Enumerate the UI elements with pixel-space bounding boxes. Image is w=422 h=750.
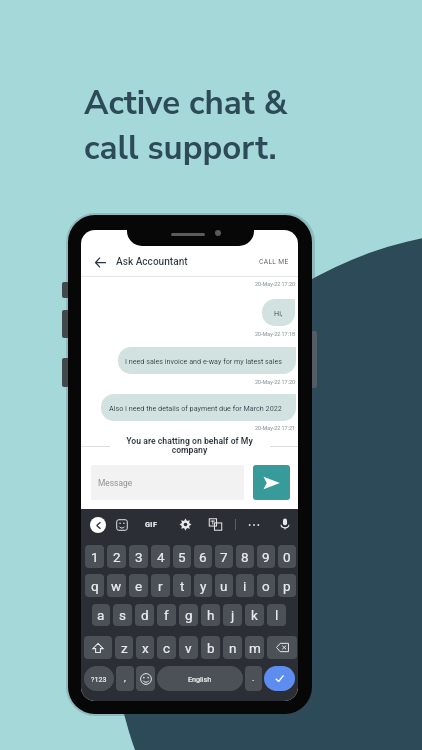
button[interactable]: o bbox=[257, 574, 275, 597]
staticText: . bbox=[252, 673, 255, 684]
button[interactable]: Send bbox=[253, 465, 290, 500]
button[interactable]: a bbox=[92, 604, 110, 626]
button[interactable]: Shift bbox=[84, 636, 112, 659]
staticText: t bbox=[180, 578, 185, 594]
staticText: 0 bbox=[283, 549, 291, 565]
staticText: call support. bbox=[84, 126, 277, 171]
button[interactable]: s bbox=[113, 604, 132, 626]
staticText: CALL ME bbox=[259, 258, 289, 266]
staticText: , bbox=[124, 673, 126, 684]
staticText: 20-May-22 17:20 bbox=[255, 281, 296, 287]
staticText: Hi, bbox=[274, 309, 283, 317]
staticText: y bbox=[200, 578, 207, 594]
staticText: z bbox=[121, 640, 128, 656]
button[interactable]: 9 bbox=[257, 545, 275, 568]
staticText: x bbox=[142, 640, 149, 656]
staticText: Active chat & bbox=[84, 81, 288, 126]
button[interactable]: Stickers bbox=[116, 519, 128, 531]
button[interactable]: u bbox=[215, 574, 233, 597]
staticText: d bbox=[141, 607, 149, 623]
staticText: 20-May-22 17:21 bbox=[255, 425, 296, 431]
staticText: g bbox=[185, 607, 193, 623]
button[interactable]: 7 bbox=[215, 545, 233, 568]
button[interactable]: f bbox=[157, 604, 176, 626]
staticText: b bbox=[207, 640, 215, 656]
staticText: a bbox=[97, 607, 105, 623]
button[interactable]: Voice input bbox=[279, 518, 291, 530]
button[interactable]: 8 bbox=[236, 545, 254, 568]
button[interactable]: q bbox=[85, 574, 104, 597]
staticText: Message bbox=[98, 478, 133, 488]
button[interactable]: 1 bbox=[85, 545, 104, 568]
staticText: f bbox=[164, 607, 169, 623]
staticText: 9 bbox=[262, 549, 270, 565]
button[interactable]: Settings bbox=[179, 518, 192, 531]
button[interactable]: Enter bbox=[264, 666, 295, 691]
button[interactable]: Also I need the details of payment due f… bbox=[101, 394, 296, 421]
button[interactable]: k bbox=[245, 604, 264, 626]
button[interactable]: Backspace bbox=[267, 636, 297, 659]
button[interactable]: v bbox=[179, 636, 198, 659]
button[interactable]: t bbox=[173, 574, 191, 597]
staticText: 20-May-22 17:20 bbox=[255, 379, 296, 385]
staticText: j bbox=[231, 607, 235, 623]
staticText: l bbox=[275, 607, 279, 623]
button[interactable]: 5 bbox=[173, 545, 191, 568]
button[interactable]: Back bbox=[91, 253, 109, 271]
button[interactable]: y bbox=[194, 574, 212, 597]
button[interactable]: l bbox=[267, 604, 286, 626]
staticText: 8 bbox=[241, 549, 249, 565]
button[interactable]: n bbox=[223, 636, 242, 659]
button[interactable]: x bbox=[136, 636, 154, 659]
button[interactable]: c bbox=[157, 636, 176, 659]
button[interactable]: . bbox=[245, 666, 262, 691]
button[interactable]: g bbox=[179, 604, 198, 626]
button[interactable]: Translate bbox=[209, 518, 222, 531]
staticText: 20-May-22 17:18 bbox=[255, 331, 296, 337]
button[interactable]: Collapse toolbar bbox=[90, 517, 106, 533]
staticText: i bbox=[243, 578, 247, 594]
staticText: h bbox=[207, 607, 215, 623]
button[interactable]: p bbox=[278, 574, 296, 597]
button[interactable]: 3 bbox=[129, 545, 148, 568]
button[interactable]: More bbox=[248, 519, 260, 531]
staticText: 7 bbox=[220, 549, 228, 565]
staticText: 5 bbox=[178, 549, 186, 565]
button[interactable]: I need sales invoice and e-way for my la… bbox=[118, 347, 296, 374]
button[interactable]: b bbox=[201, 636, 220, 659]
button[interactable]: GIF bbox=[145, 520, 158, 529]
button[interactable]: Emoji bbox=[136, 666, 155, 691]
button[interactable]: e bbox=[129, 574, 148, 597]
button[interactable]: i bbox=[236, 574, 254, 597]
staticText: k bbox=[251, 607, 258, 623]
button[interactable]: , bbox=[116, 666, 134, 691]
staticText: v bbox=[185, 640, 192, 656]
button[interactable]: 2 bbox=[107, 545, 126, 568]
button[interactable]: 6 bbox=[194, 545, 212, 568]
button[interactable]: ?123 bbox=[84, 666, 114, 691]
staticText: r bbox=[158, 578, 163, 594]
staticText: w bbox=[111, 578, 122, 594]
staticText: n bbox=[229, 640, 237, 656]
button[interactable]: w bbox=[107, 574, 126, 597]
staticText: 6 bbox=[199, 549, 207, 565]
staticText: u bbox=[220, 578, 228, 594]
button[interactable]: m bbox=[245, 636, 264, 659]
staticText: 2 bbox=[113, 549, 121, 565]
button[interactable]: Hi, bbox=[262, 299, 295, 326]
button[interactable]: 0 bbox=[278, 545, 296, 568]
staticText: e bbox=[135, 578, 143, 594]
button[interactable]: English bbox=[157, 666, 243, 691]
button[interactable]: CALL ME bbox=[257, 254, 291, 270]
button[interactable]: d bbox=[135, 604, 154, 626]
button[interactable]: j bbox=[223, 604, 242, 626]
button[interactable]: z bbox=[115, 636, 133, 659]
staticText: GIF bbox=[145, 520, 158, 529]
button[interactable]: r bbox=[151, 574, 170, 597]
staticText: You are chatting on behalf of My company bbox=[121, 436, 258, 455]
button[interactable]: h bbox=[201, 604, 220, 626]
staticText: 3 bbox=[135, 549, 143, 565]
staticText: o bbox=[262, 578, 270, 594]
button[interactable]: 4 bbox=[151, 545, 170, 568]
button[interactable]: Message bbox=[91, 465, 244, 500]
